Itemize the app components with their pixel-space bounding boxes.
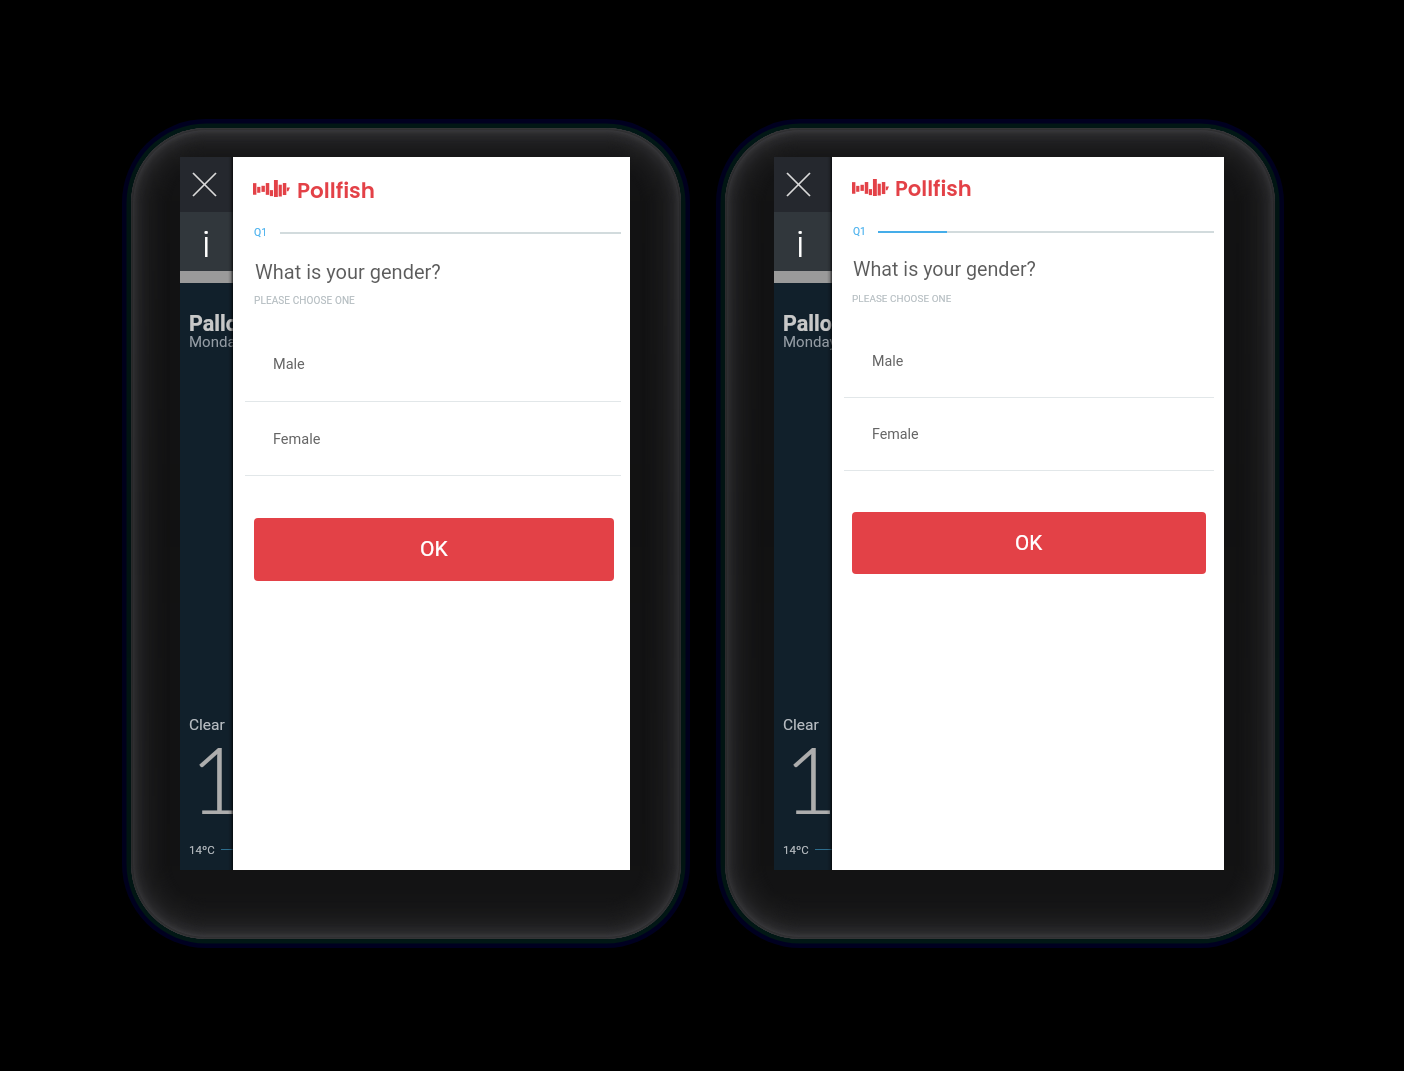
staticText: OK xyxy=(1015,531,1043,555)
button[interactable]: OK xyxy=(254,518,614,581)
button[interactable]: i xyxy=(774,212,1224,271)
staticText: 14ºC xyxy=(783,843,809,856)
button[interactable]: i xyxy=(180,212,630,271)
staticText: Female xyxy=(273,431,321,448)
staticText: OK xyxy=(420,537,448,562)
staticText: What is your gender? xyxy=(853,258,1036,281)
button[interactable]: Close xyxy=(187,167,222,202)
staticText: Q1 xyxy=(853,225,866,237)
staticText: Pallou xyxy=(783,311,844,336)
staticText: Q1 xyxy=(254,226,268,238)
staticText: 14ºC xyxy=(189,843,215,856)
staticText: Monday xyxy=(189,333,243,351)
button[interactable]: Male xyxy=(233,328,630,402)
staticText: Pallou xyxy=(189,311,250,336)
staticText: 1 xyxy=(784,723,838,833)
staticText: i xyxy=(202,223,211,266)
staticText: Male xyxy=(273,356,305,373)
button[interactable]: Female xyxy=(832,398,1224,471)
staticText: PLEASE CHOOSE ONE xyxy=(254,295,355,307)
staticText: Clear xyxy=(783,716,819,734)
staticText: Female xyxy=(872,426,919,443)
staticText: 1 xyxy=(190,723,244,833)
staticText: PLEASE CHOOSE ONE xyxy=(852,293,952,305)
staticText: Pollfish xyxy=(297,175,376,205)
button[interactable]: Male xyxy=(832,325,1224,398)
staticText: Pollfish xyxy=(895,174,972,204)
button[interactable]: Close xyxy=(781,167,816,202)
staticText: Male xyxy=(872,353,904,370)
button[interactable]: OK xyxy=(852,512,1206,574)
staticText: Monday xyxy=(783,333,837,351)
staticText: What is your gender? xyxy=(255,260,441,283)
button[interactable]: Female xyxy=(233,402,630,476)
staticText: Clear xyxy=(189,716,225,734)
staticText: i xyxy=(796,223,805,266)
